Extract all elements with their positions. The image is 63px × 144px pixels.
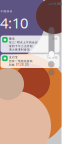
button[interactable]: 支付宝 [0,54,59,68]
button[interactable]: 微信 [0,36,59,53]
staticText: 张三: 明天上午的会议 [9,40,38,44]
staticText: 中国移动 [0,10,12,13]
staticText: 请大家准时参加 [9,48,30,51]
staticText: 到账 ¥128.00 [9,63,29,66]
staticText: 5分钟前 [47,56,58,59]
staticText: 支付宝 [9,56,18,59]
staticText: 微信 [9,37,15,40]
staticText: 现在 [52,37,58,40]
button[interactable]: Camera [48,61,54,67]
button[interactable]: Flashlight [48,69,54,76]
staticText: 4:10 [0,13,28,33]
staticText: 您有一笔新的收款 [9,59,33,63]
staticText: 改到下午三点开始 [9,44,33,48]
